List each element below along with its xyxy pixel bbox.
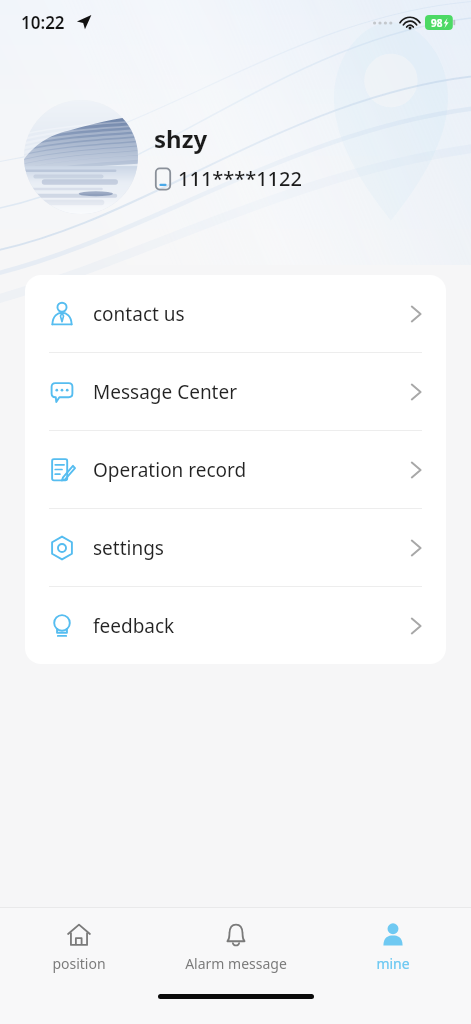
staticText: contact us [93,301,410,327]
button[interactable]: feedback [25,587,446,664]
staticText: Operation record [93,457,410,483]
button[interactable]: settings [25,509,446,586]
button[interactable]: Message Center [25,353,446,430]
staticText: Message Center [93,379,410,405]
staticText: mine [376,954,410,973]
staticText: feedback [93,613,410,639]
staticText: position [52,954,106,973]
button[interactable]: mine [314,908,471,986]
staticText: shzy [154,122,208,155]
button[interactable]: Alarm message [157,908,314,986]
staticText: settings [93,535,410,561]
staticText: 98 [431,16,443,30]
staticText: 10:22 [21,11,65,34]
button[interactable]: Operation record [25,431,446,508]
button[interactable]: shzy [24,100,471,214]
staticText: 111****1122 [178,165,302,192]
button[interactable]: contact us [25,275,446,352]
button[interactable]: position [0,908,157,986]
staticText: Alarm message [185,954,287,973]
